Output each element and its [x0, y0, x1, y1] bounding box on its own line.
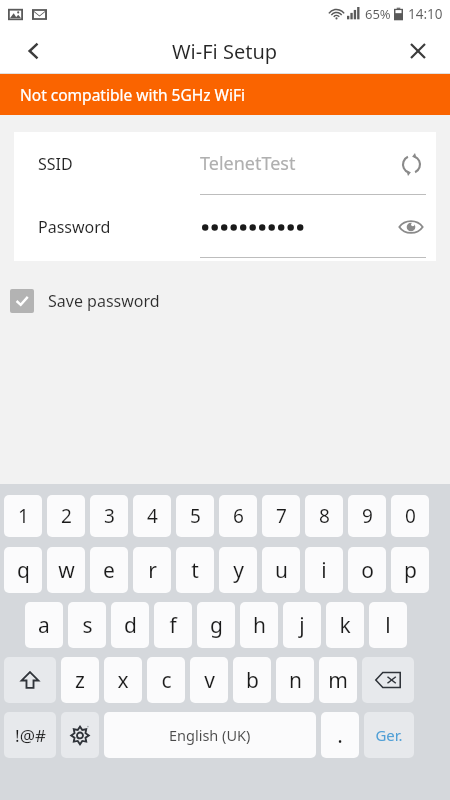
button[interactable]: Backspace: [362, 657, 414, 703]
staticText: 9: [362, 503, 373, 529]
button[interactable]: 8: [305, 495, 343, 537]
button[interactable]: j: [283, 602, 321, 648]
staticText: g: [210, 611, 223, 640]
staticText: i: [321, 556, 327, 585]
button[interactable]: g: [197, 602, 235, 648]
staticText: 7: [276, 503, 287, 529]
staticText: l: [385, 611, 391, 640]
staticText: .: [337, 721, 343, 750]
button[interactable]: y: [219, 547, 257, 593]
staticText: TelenetTest: [200, 151, 296, 176]
button[interactable]: p: [391, 547, 429, 593]
staticText: 3: [104, 503, 115, 529]
staticText: !@#: [15, 724, 46, 747]
staticText: y: [233, 556, 244, 585]
staticText: w: [58, 556, 75, 585]
button[interactable]: k: [326, 602, 364, 648]
button[interactable]: w: [47, 547, 85, 593]
button[interactable]: Save password: [0, 281, 450, 321]
staticText: b: [246, 666, 259, 695]
button[interactable]: d: [111, 602, 149, 648]
staticText: s: [82, 611, 93, 640]
staticText: m: [328, 666, 348, 695]
staticText: 2: [61, 503, 72, 529]
button[interactable]: Close: [398, 31, 438, 71]
staticText: o: [361, 556, 374, 585]
staticText: SSID: [38, 153, 73, 175]
button[interactable]: !@#: [4, 712, 56, 758]
staticText: p: [404, 556, 417, 585]
staticText: Wi-Fi Setup: [172, 38, 278, 65]
button[interactable]: b: [233, 657, 271, 703]
button[interactable]: 4: [133, 495, 171, 537]
staticText: Password: [38, 216, 111, 238]
button[interactable]: q: [4, 547, 42, 593]
staticText: k: [339, 611, 351, 640]
button[interactable]: 6: [219, 495, 257, 537]
staticText: n: [289, 666, 302, 695]
button[interactable]: z: [61, 657, 99, 703]
button[interactable]: 0: [391, 495, 429, 537]
button[interactable]: n: [276, 657, 314, 703]
button[interactable]: 2: [47, 495, 85, 537]
staticText: d: [124, 611, 137, 640]
staticText: v: [204, 666, 215, 695]
button[interactable]: Back: [14, 31, 54, 71]
button[interactable]: a: [25, 602, 63, 648]
button[interactable]: c: [147, 657, 185, 703]
staticText: 5: [190, 503, 201, 529]
staticText: 65%: [365, 5, 391, 23]
button[interactable]: l: [369, 602, 407, 648]
staticText: a: [38, 611, 50, 640]
button[interactable]: English (UK): [104, 712, 316, 758]
button[interactable]: .: [321, 712, 359, 758]
staticText: 4: [147, 503, 158, 529]
button[interactable]: s: [68, 602, 106, 648]
staticText: u: [275, 556, 288, 585]
button[interactable]: h: [240, 602, 278, 648]
button[interactable]: v: [190, 657, 228, 703]
button[interactable]: t: [176, 547, 214, 593]
staticText: h: [253, 611, 266, 640]
button[interactable]: Settings: [61, 712, 99, 758]
staticText: j: [299, 611, 305, 640]
staticText: f: [169, 611, 177, 640]
button[interactable]: m: [319, 657, 357, 703]
staticText: Ger.: [375, 725, 403, 745]
button[interactable]: o: [348, 547, 386, 593]
staticText: 6: [233, 503, 244, 529]
button[interactable]: u: [262, 547, 300, 593]
staticText: 8: [319, 503, 330, 529]
staticText: Not compatible with 5GHz WiFi: [20, 84, 246, 105]
staticText: Save password: [48, 290, 160, 312]
button[interactable]: 5: [176, 495, 214, 537]
button[interactable]: e: [90, 547, 128, 593]
staticText: q: [17, 556, 30, 585]
button[interactable]: Shift: [4, 657, 56, 703]
button[interactable]: i: [305, 547, 343, 593]
staticText: c: [161, 666, 172, 695]
button[interactable]: f: [154, 602, 192, 648]
button[interactable]: 3: [90, 495, 128, 537]
button[interactable]: Show password: [392, 208, 430, 246]
button[interactable]: x: [104, 657, 142, 703]
staticText: r: [148, 556, 157, 585]
staticText: e: [103, 556, 115, 585]
staticText: 14:10: [408, 5, 443, 23]
staticText: 1: [18, 503, 29, 529]
button[interactable]: Refresh: [392, 145, 430, 183]
button[interactable]: 7: [262, 495, 300, 537]
staticText: 0: [405, 503, 416, 529]
staticText: English (UK): [169, 725, 251, 745]
button[interactable]: 1: [4, 495, 42, 537]
button[interactable]: 9: [348, 495, 386, 537]
staticText: t: [191, 556, 199, 585]
button[interactable]: r: [133, 547, 171, 593]
staticText: z: [75, 666, 85, 695]
staticText: x: [117, 666, 129, 695]
button[interactable]: Ger.: [364, 712, 414, 758]
